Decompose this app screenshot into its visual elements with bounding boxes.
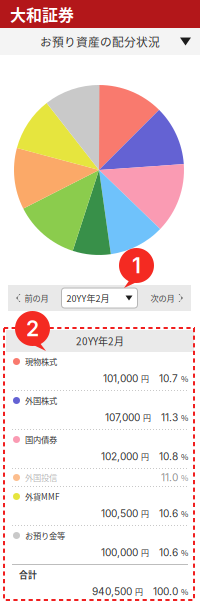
staticText: 940,500 (92, 585, 132, 598)
staticText: 前の月 (24, 292, 48, 304)
staticText: お預り金等 (25, 529, 65, 541)
staticText: 1 (132, 253, 141, 278)
staticText: 外貨MMF (25, 490, 60, 502)
staticText: 現物株式 (25, 355, 57, 367)
button[interactable]: 次の月 (146, 285, 191, 311)
staticText: 20YY年2月 (66, 291, 109, 304)
staticText: % (181, 508, 188, 519)
staticText: % (181, 547, 188, 558)
staticText: 外国株式 (25, 394, 57, 406)
staticText: 国内債券 (25, 433, 57, 445)
staticText: お預り資産の配分状況 (40, 33, 160, 50)
staticText: 10.7 (159, 372, 178, 385)
staticText: 100,500 (101, 507, 138, 520)
staticText: 11.3 (161, 411, 178, 424)
staticText: 円 (141, 547, 149, 558)
staticText: 円 (141, 508, 149, 519)
staticText: 合計 (19, 568, 37, 581)
staticText: 11.0 (161, 471, 178, 484)
staticText: 10.6 (159, 546, 178, 559)
button[interactable]: お預り資産の配分状況 (0, 28, 200, 55)
staticText: 102,000 (101, 450, 138, 463)
staticText: % (181, 586, 188, 597)
staticText: 円 (141, 373, 149, 384)
staticText: 外国投信 (25, 471, 57, 483)
staticText: 2 (26, 316, 39, 341)
staticText: 大和証券 (10, 2, 74, 26)
staticText: 10.8 (159, 450, 178, 463)
staticText: % (181, 451, 188, 462)
staticText: 円 (141, 451, 149, 462)
staticText: 100.0 (153, 585, 178, 598)
staticText: 20YY年2月 (76, 334, 124, 348)
staticText: 10.6 (159, 507, 178, 520)
staticText: 101,000 (103, 372, 138, 385)
staticText: % (181, 373, 188, 384)
staticText: 円 (135, 586, 143, 597)
staticText: 107,000 (105, 411, 140, 424)
button[interactable]: 前の月 (8, 285, 52, 311)
staticText: 円 (143, 412, 151, 423)
staticText: % (181, 472, 188, 483)
button[interactable]: 20YY年2月 (61, 288, 137, 308)
staticText: 100,000 (101, 546, 138, 559)
staticText: % (181, 412, 188, 423)
staticText: 次の月 (150, 292, 174, 304)
